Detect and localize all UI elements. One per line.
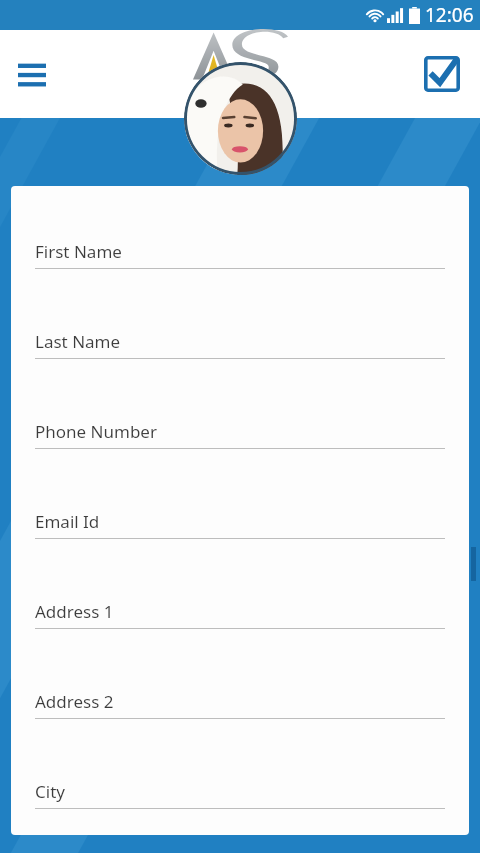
button[interactable]: Save bbox=[418, 50, 466, 98]
staticText: Last Name bbox=[35, 330, 121, 353]
button[interactable]: City bbox=[35, 780, 445, 835]
button[interactable]: Profile photo bbox=[184, 62, 297, 175]
button[interactable]: First Name bbox=[35, 240, 445, 330]
staticText: Address 1 bbox=[35, 600, 114, 623]
button[interactable]: Address 1 bbox=[35, 600, 445, 690]
button[interactable]: Last Name bbox=[35, 330, 445, 420]
staticText: First Name bbox=[35, 240, 122, 263]
button[interactable]: Email Id bbox=[35, 510, 445, 600]
button[interactable]: Phone Number bbox=[35, 420, 445, 510]
staticText: Address 2 bbox=[35, 690, 114, 713]
button[interactable]: Open navigation menu bbox=[10, 52, 54, 96]
staticText: City bbox=[35, 780, 65, 803]
staticText: Email Id bbox=[35, 510, 100, 533]
staticText: Phone Number bbox=[35, 420, 157, 443]
button[interactable]: Address 2 bbox=[35, 690, 445, 780]
staticText: 12:06 bbox=[425, 2, 474, 28]
